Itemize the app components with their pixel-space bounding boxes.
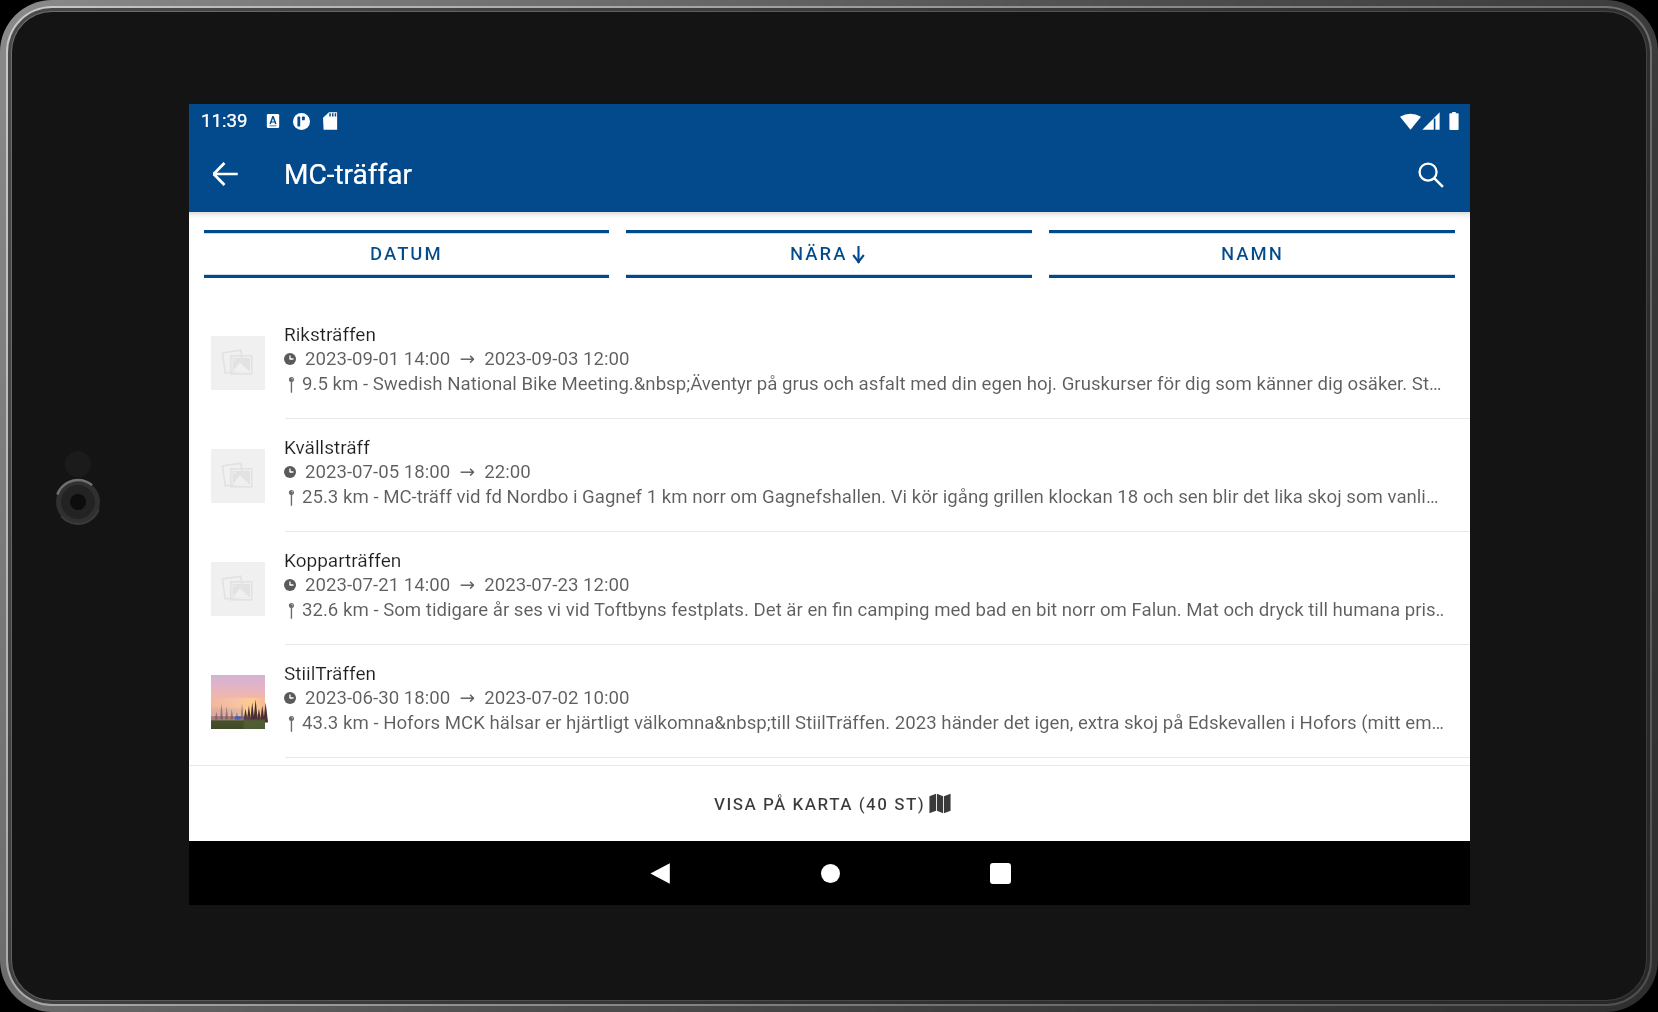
staticText: Riksträffen (284, 323, 376, 345)
button[interactable]: Kvällsträff (189, 419, 1470, 532)
staticText: 2023-09-01 14:00 → 2023-09-03 12:00 (305, 348, 630, 370)
button[interactable]: Kopparträffen (189, 532, 1470, 645)
staticText: 2023-06-30 18:00 → 2023-07-02 10:00 (305, 687, 630, 709)
staticText: 32.6 km - Som tidigare år ses vi vid Tof… (302, 599, 1443, 621)
staticText: NAMN (1221, 243, 1284, 265)
staticText: 43.3 km - Hofors MCK hälsar er hjärtligt… (302, 712, 1443, 734)
staticText: Kvällsträff (284, 436, 370, 458)
staticText: StiilTräffen (284, 662, 376, 684)
button[interactable]: Home (798, 841, 862, 905)
staticText: 2023-07-21 14:00 → 2023-07-23 12:00 (305, 574, 630, 596)
staticText: Kopparträffen (284, 549, 402, 571)
button[interactable]: Back (628, 841, 692, 905)
button[interactable]: StiilTräffen (189, 645, 1470, 758)
button[interactable]: DATUM (204, 230, 609, 278)
button[interactable]: Recent apps (968, 841, 1032, 905)
button[interactable]: VISA PÅ KARTA (40 ST) (189, 766, 1470, 841)
staticText: DATUM (370, 243, 443, 265)
staticText: 25.3 km - MC-träff vid fd Nordbo i Gagne… (302, 486, 1439, 508)
staticText: 2023-07-05 18:00 → 22:00 (305, 461, 531, 483)
button[interactable]: NAMN (1049, 230, 1455, 278)
staticText: NÄRA (790, 243, 848, 265)
button[interactable]: Riksträffen (189, 306, 1470, 419)
button[interactable]: NÄRA (626, 230, 1032, 278)
staticText: VISA PÅ KARTA (40 ST) (714, 794, 926, 814)
button[interactable]: Search (1404, 148, 1456, 200)
button[interactable]: Navigate up (199, 148, 251, 200)
staticText: 9.5 km - Swedish National Bike Meeting.&… (302, 373, 1442, 395)
staticText: MC-träffar (284, 158, 412, 191)
staticText: 11:39 (201, 110, 248, 132)
